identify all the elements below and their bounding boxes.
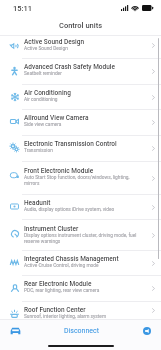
staticText: Front Electronic Module <box>24 167 94 175</box>
staticText: Active Sound Design <box>24 46 68 52</box>
staticText: Headunit <box>24 199 51 207</box>
button[interactable]: Vehicle <box>8 324 22 338</box>
staticText: Active Sound Design <box>24 38 85 46</box>
button[interactable]: Front Electronic Module <box>0 162 161 195</box>
button[interactable]: Settings <box>141 325 153 337</box>
staticText: Advanced Crash Safety Module <box>24 63 115 71</box>
staticText: Display options instrument cluster, driv… <box>24 233 137 245</box>
button[interactable]: Roof Function Center <box>0 302 161 319</box>
staticText: 15:11 <box>13 4 33 13</box>
button[interactable]: Disconnect <box>22 320 141 342</box>
staticText: PDC, rear lighting, rear view camera <box>24 288 100 294</box>
button[interactable]: Instrument Cluster <box>0 220 161 251</box>
button[interactable]: Advanced Crash Safety Module <box>0 59 161 85</box>
staticText: Integrated Chassis Management <box>24 255 119 263</box>
staticText: Instrument Cluster <box>24 225 79 233</box>
staticText: Roof Function Center <box>24 306 86 314</box>
staticText: Rear Electronic Module <box>24 280 92 288</box>
button[interactable]: Electronic Transmission Control <box>0 136 161 162</box>
button[interactable]: Rear Electronic Module <box>0 276 161 302</box>
button[interactable]: Headunit <box>0 195 161 220</box>
button[interactable]: Air Conditioning <box>0 85 161 110</box>
button[interactable]: Active Sound Design <box>0 36 161 59</box>
staticText: Allround View Camera <box>24 114 89 122</box>
staticText: Air Conditioning <box>24 89 71 97</box>
staticText: Side view camera <box>24 122 62 128</box>
staticText: Control units <box>59 21 103 30</box>
button[interactable]: Integrated Chassis Management <box>0 251 161 276</box>
staticText: Electronic Transmission Control <box>24 140 117 148</box>
staticText: Seatbelt reminder <box>24 71 62 77</box>
staticText: Audio, display options iDrive system, vi… <box>24 207 115 213</box>
staticText: Sunroof, interior lighting, alarm system <box>24 314 107 319</box>
staticText: Air conditioning <box>24 97 58 103</box>
staticText: Transmission <box>24 148 53 154</box>
button[interactable]: Allround View Camera <box>0 110 161 136</box>
staticText: Active Cruise Control, driving mode <box>24 263 99 269</box>
staticText: Disconnect <box>64 327 99 335</box>
staticText: Auto Start Stop function, doors/windows,… <box>24 175 130 187</box>
